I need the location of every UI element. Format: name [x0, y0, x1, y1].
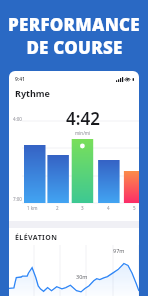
staticText: 30m	[76, 273, 88, 280]
staticText: 1 km	[27, 205, 38, 211]
staticText: Rythme	[15, 87, 50, 99]
staticText: 97m	[113, 247, 125, 254]
staticText: min/mi	[75, 130, 91, 136]
staticText: 4:00	[13, 116, 22, 122]
staticText: 2	[56, 205, 59, 211]
staticText: DE COURSE	[26, 36, 123, 59]
staticText: 5	[133, 205, 136, 211]
staticText: PERFORMANCE	[8, 13, 140, 36]
staticText: 3	[81, 205, 84, 211]
staticText: ÉLÉVATION	[15, 233, 58, 243]
staticText: 9:41	[15, 76, 25, 83]
staticText: 4	[107, 205, 110, 211]
staticText: 4:42	[66, 107, 100, 130]
staticText: 7:00	[13, 196, 22, 202]
